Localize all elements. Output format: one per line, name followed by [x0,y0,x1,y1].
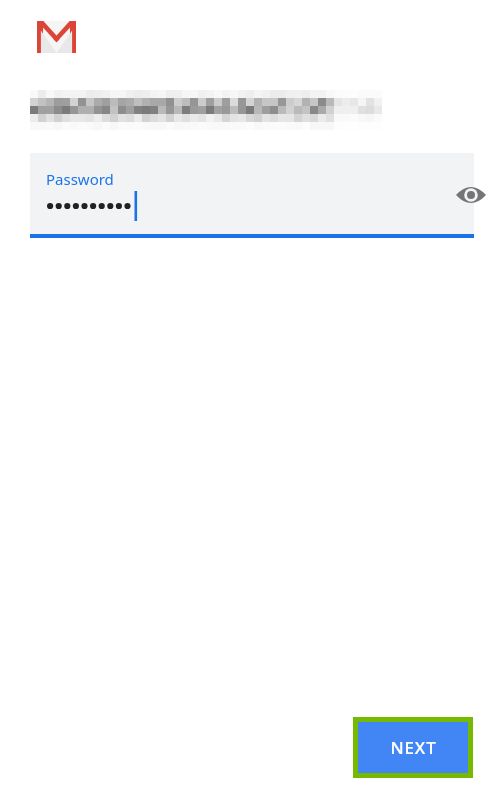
button[interactable]: Show password [447,171,495,219]
staticText: NEXT [390,736,437,759]
staticText: Password [46,169,114,189]
button[interactable]: Password [30,153,474,238]
button[interactable]: NEXT [358,722,468,773]
